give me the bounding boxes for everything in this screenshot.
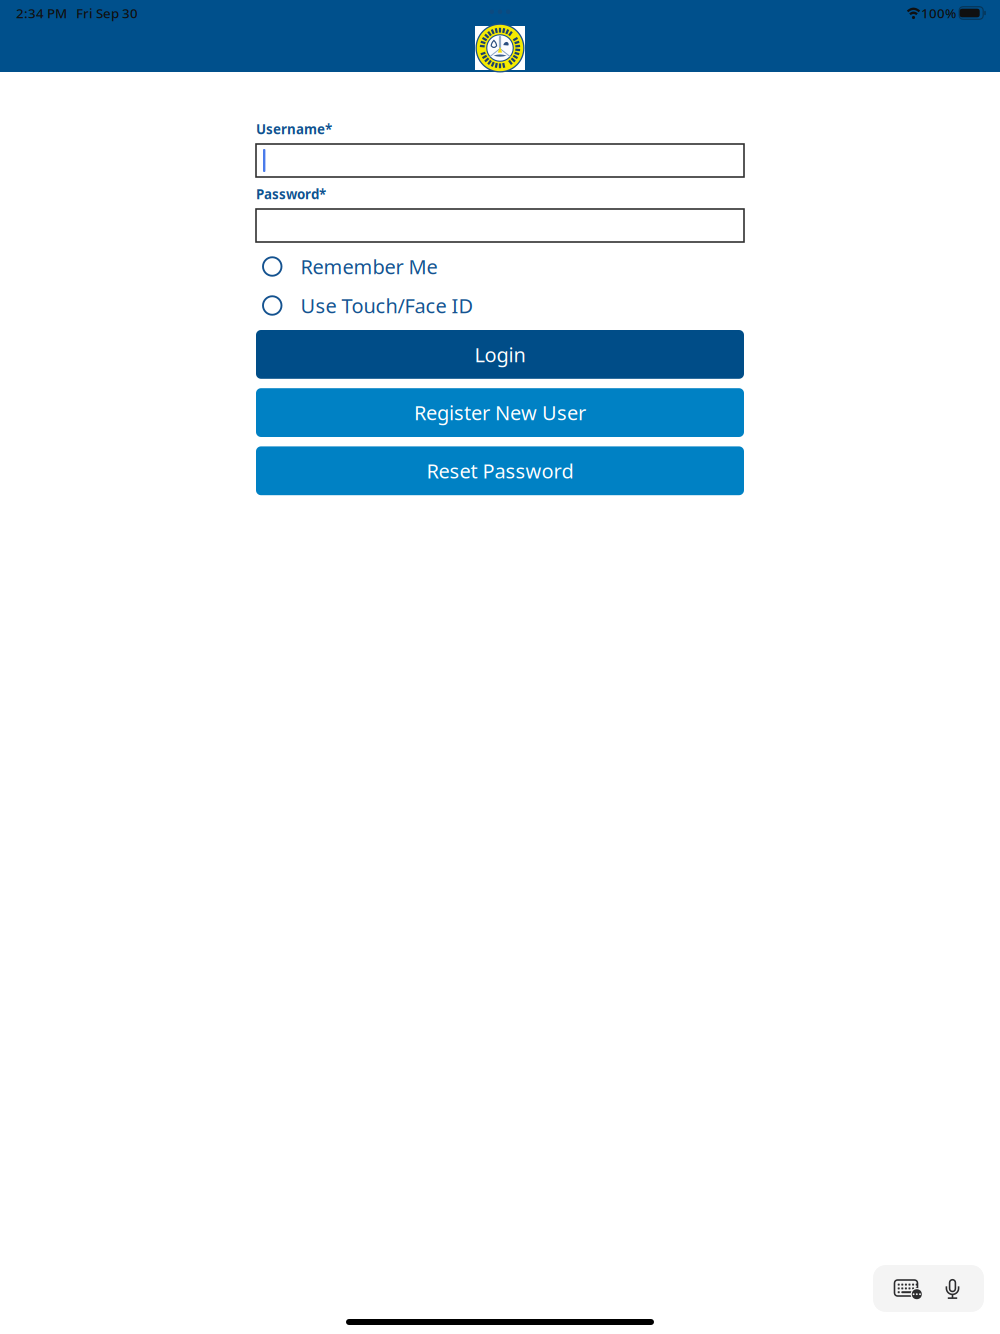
staticText: Password* (256, 185, 326, 203)
button[interactable]: Dictation (935, 1265, 984, 1312)
staticText: 2:34 PM (16, 4, 67, 22)
staticText: Remember Me (300, 253, 437, 280)
staticText: 100% (921, 4, 956, 22)
staticText: Reset Password (426, 457, 573, 484)
button[interactable]: Register New User (256, 388, 744, 437)
button[interactable]: Login (256, 330, 744, 379)
button[interactable]: Keyboard options (873, 1265, 935, 1312)
staticText: Fri Sep 30 (76, 4, 138, 22)
staticText: Login (474, 341, 525, 368)
button[interactable]: Reset Password (256, 446, 744, 495)
button[interactable]: Use Touch/Face ID (256, 286, 744, 325)
staticText: Username* (256, 120, 332, 138)
button[interactable]: Remember Me (256, 247, 744, 286)
staticText: Register New User (414, 399, 586, 426)
staticText: Use Touch/Face ID (300, 292, 473, 319)
